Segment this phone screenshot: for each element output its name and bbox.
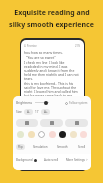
button[interactable] xyxy=(38,131,45,138)
staticText: tears. xyxy=(24,76,33,80)
button[interactable] xyxy=(16,119,38,127)
staticText: Smooth xyxy=(57,145,68,149)
button[interactable] xyxy=(40,119,63,127)
staticText: hou how so many times. xyxy=(24,50,63,54)
staticText: I check my line, I look like something h… xyxy=(24,60,81,64)
staticText: Background xyxy=(16,158,33,162)
button[interactable]: Simulation xyxy=(31,144,50,150)
staticText: this is my boyfriend.. This is his perso… xyxy=(24,81,81,85)
button[interactable]: Auto scroll xyxy=(44,158,59,162)
button[interactable] xyxy=(49,131,56,138)
button[interactable]: More Settings xyxy=(66,158,88,162)
staticText: all the night with him. xyxy=(24,101,59,105)
staticText: "You are so sweet" xyxy=(26,55,56,59)
button[interactable] xyxy=(35,100,49,105)
button[interactable] xyxy=(65,119,88,127)
staticText: held me then nightly and I can not stop … xyxy=(24,72,81,76)
staticText: 17 xyxy=(35,110,39,114)
button[interactable] xyxy=(17,131,24,138)
button[interactable]: A+ xyxy=(41,109,50,115)
staticText: Follow system xyxy=(69,101,88,105)
staticText: but he never came back to me again and xyxy=(24,93,81,97)
staticText: 4. Promise xyxy=(24,44,37,48)
button[interactable]: Scroll xyxy=(76,144,88,150)
staticText: Simulation xyxy=(33,145,48,149)
staticText: Exquisite reading and xyxy=(14,8,90,18)
staticText: A- xyxy=(27,110,30,114)
staticText: exploded in my mind. I was backwards and xyxy=(24,64,81,68)
staticText: A+ xyxy=(44,110,48,114)
staticText: suddenly and i know it from the ground. … xyxy=(24,68,81,72)
staticText: said for love me. Throughout the whole xyxy=(24,85,81,89)
button[interactable] xyxy=(59,131,66,138)
staticText: night, I leaved him and called him for h… xyxy=(24,89,81,93)
staticText: 21% xyxy=(75,44,81,48)
staticText: Brightness xyxy=(16,101,33,105)
staticText: Scroll xyxy=(78,145,86,149)
button[interactable]: A- xyxy=(24,109,33,115)
button[interactable]: Follow system xyxy=(65,101,88,105)
button[interactable] xyxy=(28,131,35,138)
button[interactable]: Smooth xyxy=(55,144,70,150)
staticText: Size xyxy=(16,110,22,114)
button[interactable]: Background xyxy=(16,158,37,162)
staticText: Flip xyxy=(18,145,23,149)
button[interactable] xyxy=(70,131,77,138)
staticText: silky smooth experience xyxy=(9,20,94,30)
button[interactable]: Flip xyxy=(16,144,25,150)
button[interactable] xyxy=(80,131,87,138)
staticText: More Settings xyxy=(66,158,85,162)
staticText: > xyxy=(86,158,88,162)
